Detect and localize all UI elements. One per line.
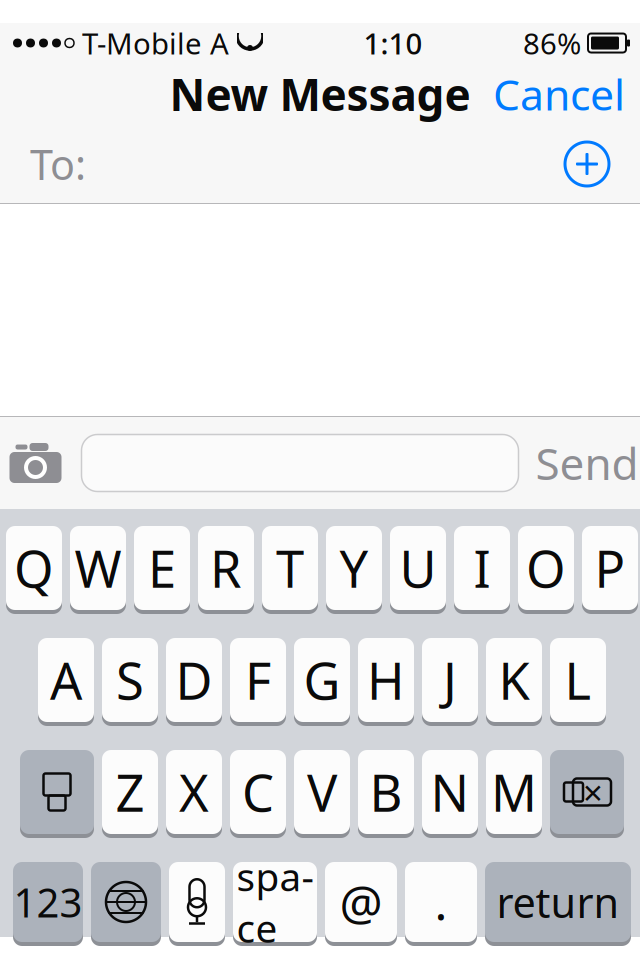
staticText: Send <box>535 434 638 492</box>
button[interactable]: Add Contact <box>556 133 618 195</box>
button[interactable]: W <box>70 526 126 614</box>
button[interactable]: L <box>550 638 606 726</box>
button[interactable]: Cancel <box>485 60 633 128</box>
staticText: L <box>564 646 591 714</box>
staticText: H <box>367 646 405 714</box>
button[interactable]: A <box>38 638 94 726</box>
staticText: V <box>307 758 337 826</box>
staticText: Z <box>115 758 144 826</box>
button[interactable]: T <box>262 526 318 614</box>
button[interactable]: R <box>198 526 254 614</box>
staticText: R <box>210 534 242 602</box>
button[interactable]: E <box>134 526 190 614</box>
staticText: B <box>369 758 402 826</box>
staticText: 86% <box>523 23 581 62</box>
button[interactable]: Shift <box>20 750 94 838</box>
staticText: K <box>498 646 529 714</box>
button[interactable]: Delete <box>550 750 624 838</box>
button[interactable]: U <box>390 526 446 614</box>
staticText: A <box>50 646 82 714</box>
staticText: 123 <box>13 875 82 928</box>
button[interactable]: Camera <box>0 433 61 493</box>
button[interactable]: I <box>454 526 510 614</box>
button[interactable]: V <box>294 750 350 838</box>
staticText: X <box>179 758 209 826</box>
button[interactable]: M <box>486 750 542 838</box>
button[interactable]: space <box>233 862 317 946</box>
staticText: P <box>594 534 625 602</box>
staticText: F <box>245 646 271 714</box>
button[interactable]: Y <box>326 526 382 614</box>
button[interactable]: Z <box>102 750 158 838</box>
staticText: M <box>491 758 537 826</box>
staticText: space <box>236 851 313 953</box>
staticText: O <box>526 534 566 602</box>
button[interactable]: C <box>230 750 286 838</box>
button[interactable]: Send <box>527 428 640 498</box>
staticText: × <box>583 769 603 815</box>
button[interactable]: N <box>422 750 478 838</box>
staticText: W <box>74 534 121 602</box>
button[interactable]: return <box>485 862 631 946</box>
staticText: Cancel <box>493 66 625 122</box>
staticText: S <box>116 646 144 714</box>
staticText: @ <box>339 870 382 934</box>
button[interactable]: F <box>230 638 286 726</box>
button[interactable]: G <box>294 638 350 726</box>
button[interactable]: Next Keyboard <box>91 862 161 946</box>
button[interactable]: K <box>486 638 542 726</box>
staticText: C <box>242 758 274 826</box>
button[interactable]: S <box>102 638 158 726</box>
button[interactable]: H <box>358 638 414 726</box>
staticText: To: <box>30 137 86 191</box>
staticText: G <box>303 646 340 714</box>
button[interactable]: @ <box>325 862 397 946</box>
button[interactable]: O <box>518 526 574 614</box>
staticText: return <box>496 875 619 929</box>
staticText: New Message <box>169 65 470 123</box>
button[interactable]: B <box>358 750 414 838</box>
button[interactable]: Q <box>6 526 62 614</box>
staticText: 1:10 <box>363 23 422 62</box>
button[interactable]: X <box>166 750 222 838</box>
staticText: J <box>443 646 457 714</box>
staticText: T-Mobile A <box>82 23 229 62</box>
button[interactable]: J <box>422 638 478 726</box>
staticText: I <box>473 534 490 602</box>
button[interactable]: D <box>166 638 222 726</box>
staticText: Y <box>339 534 368 602</box>
button[interactable]: Dictation <box>169 862 225 946</box>
staticText: E <box>148 534 176 602</box>
staticText: Q <box>14 534 54 602</box>
staticText: T <box>276 534 304 602</box>
staticText: D <box>175 646 212 714</box>
button[interactable]: . <box>405 862 477 946</box>
button[interactable]: 123 <box>13 862 83 946</box>
button[interactable]: P <box>582 526 638 614</box>
staticText: . <box>434 870 447 934</box>
staticText: N <box>430 758 469 826</box>
staticText: U <box>399 534 436 602</box>
